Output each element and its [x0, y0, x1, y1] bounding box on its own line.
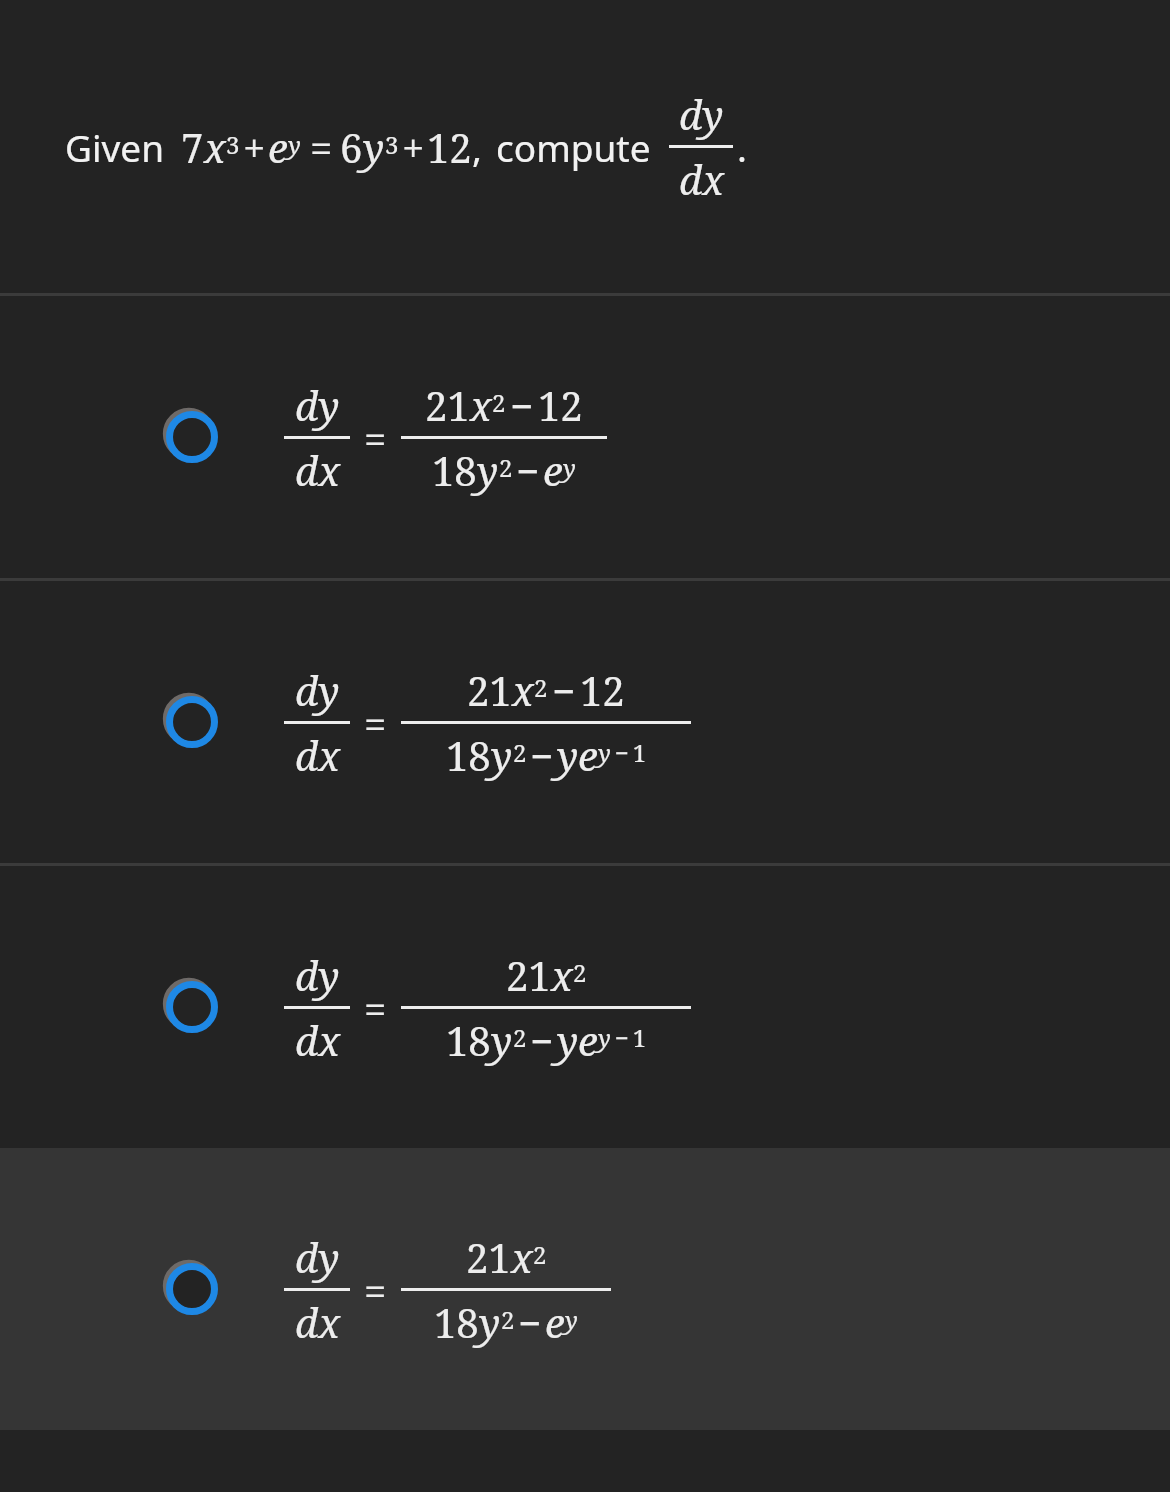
staticText: Given [65, 122, 165, 172]
staticText: y [563, 451, 576, 484]
staticText: = [364, 1263, 387, 1317]
staticText: − [530, 728, 554, 782]
staticText: − 1 [611, 736, 647, 769]
staticText: dx [295, 728, 340, 782]
staticText: + [402, 120, 425, 174]
button[interactable]: Answer option 4 [0, 1148, 1170, 1430]
staticText: x [511, 1230, 533, 1284]
staticText: x [512, 663, 534, 717]
staticText: . [737, 122, 747, 172]
staticText: − 1 [611, 1021, 647, 1054]
staticText: 21 [466, 1230, 511, 1284]
staticText: 7 [181, 120, 204, 174]
staticText: dy [295, 663, 340, 717]
staticText: − [552, 663, 576, 717]
staticText: 6 [340, 120, 363, 174]
staticText: 21 [425, 378, 470, 432]
staticText: 2 [513, 736, 527, 769]
staticText: 21 [467, 663, 512, 717]
staticText: y [491, 728, 513, 782]
staticText: 2 [499, 451, 513, 484]
staticText: 18 [446, 1013, 491, 1067]
staticText: − [516, 443, 540, 497]
staticText: x [470, 378, 492, 432]
staticText: = [310, 120, 333, 174]
staticText: 3 [226, 128, 240, 161]
staticText: , [472, 122, 482, 172]
staticText: dx [679, 152, 724, 206]
staticText: 12 [580, 663, 625, 717]
staticText: e [545, 1295, 565, 1349]
staticText: 2 [492, 386, 506, 419]
staticText: ye [557, 1013, 598, 1067]
staticText: y [477, 443, 499, 497]
staticText: = [364, 696, 387, 750]
staticText: dy [295, 1230, 340, 1284]
staticText: x [204, 120, 226, 174]
staticText: 12 [538, 378, 583, 432]
staticText: − [518, 1295, 542, 1349]
staticText: y [363, 120, 385, 174]
staticText: 18 [432, 443, 477, 497]
staticText: = [364, 981, 387, 1035]
staticText: 2 [573, 956, 587, 989]
staticText: e [543, 443, 563, 497]
staticText: 21 [506, 948, 551, 1002]
staticText: 2 [534, 671, 548, 704]
staticText: compute [496, 122, 651, 172]
staticText: dy [679, 87, 724, 141]
staticText: = [364, 411, 387, 465]
staticText: y [288, 128, 301, 161]
staticText: ye [557, 728, 598, 782]
staticText: y [598, 736, 611, 769]
staticText: + [243, 120, 266, 174]
staticText: dx [295, 443, 340, 497]
staticText: 18 [446, 728, 491, 782]
staticText: 2 [513, 1021, 527, 1054]
staticText: 12 [427, 120, 472, 174]
button[interactable]: Answer option 2 [0, 581, 1170, 863]
staticText: dy [295, 948, 340, 1002]
staticText: y [479, 1295, 501, 1349]
staticText: 3 [385, 128, 399, 161]
staticText: − [510, 378, 534, 432]
staticText: 2 [501, 1303, 515, 1336]
button[interactable]: Answer option 1 [0, 296, 1170, 578]
staticText: dy [295, 378, 340, 432]
staticText: 2 [533, 1238, 547, 1271]
staticText: 18 [434, 1295, 479, 1349]
button[interactable]: Answer option 3 [0, 866, 1170, 1148]
staticText: y [598, 1021, 611, 1054]
staticText: dx [295, 1013, 340, 1067]
staticText: x [551, 948, 573, 1002]
staticText: y [565, 1303, 578, 1336]
staticText: e [268, 120, 288, 174]
staticText: dx [295, 1295, 340, 1349]
staticText: y [491, 1013, 513, 1067]
staticText: − [530, 1013, 554, 1067]
